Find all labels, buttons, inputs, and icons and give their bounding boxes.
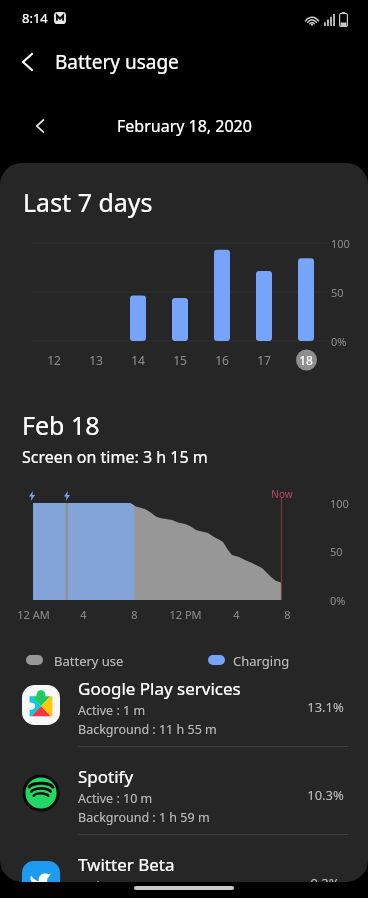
staticText: 12 AM xyxy=(17,607,50,622)
staticText: 100 xyxy=(331,236,350,251)
staticText: 12 xyxy=(47,352,61,368)
staticText: 12 PM xyxy=(169,607,202,622)
button[interactable]: Previous day xyxy=(20,107,58,145)
staticText: Last 7 days xyxy=(23,185,153,219)
staticText: February 18, 2020 xyxy=(117,115,252,137)
staticText: Twitter Beta xyxy=(78,853,175,876)
staticText: Screen on time: 3 h 15 m xyxy=(22,446,208,468)
staticText: 10.3% xyxy=(307,786,344,804)
staticText: Feb 18 xyxy=(22,408,100,442)
staticText: Now xyxy=(271,487,293,501)
staticText: Active : 10 m xyxy=(78,790,153,807)
staticText: 8 xyxy=(131,607,138,622)
button[interactable]: Twitter Beta xyxy=(0,834,368,882)
staticText: Spotify xyxy=(78,765,134,788)
button[interactable]: Navigate up xyxy=(0,36,52,88)
button[interactable]: Spotify xyxy=(0,746,368,834)
staticText: Battery use xyxy=(54,652,124,670)
staticText: 9.2% xyxy=(310,874,340,882)
staticText: 18 xyxy=(299,352,313,368)
staticText: 0% xyxy=(331,334,347,349)
staticText: 50 xyxy=(330,544,343,559)
staticText: 14 xyxy=(131,352,145,368)
staticText: 17 xyxy=(257,352,271,368)
staticText: 8 xyxy=(284,607,291,622)
button[interactable]: Google Play services xyxy=(0,658,368,746)
staticText: 15 xyxy=(173,352,187,368)
staticText: Background : 11 h 55 m xyxy=(78,721,217,738)
staticText: Google Play services xyxy=(78,677,241,700)
staticText: Battery usage xyxy=(55,49,179,75)
staticText: 100 xyxy=(330,496,349,511)
staticText: 50 xyxy=(331,285,344,300)
staticText: Active : 5 m xyxy=(78,878,146,882)
staticText: 4 xyxy=(80,607,87,622)
staticText: 4 xyxy=(233,607,240,622)
staticText: Active : 1 m xyxy=(78,702,146,719)
staticText: 0% xyxy=(330,593,346,608)
staticText: 8:14 xyxy=(22,9,48,27)
staticText: 13 xyxy=(89,352,103,368)
staticText: Charging xyxy=(233,652,290,670)
staticText: 13.1% xyxy=(307,698,344,716)
staticText: Background : 1 h 59 m xyxy=(78,809,210,826)
staticText: 16 xyxy=(215,352,229,368)
